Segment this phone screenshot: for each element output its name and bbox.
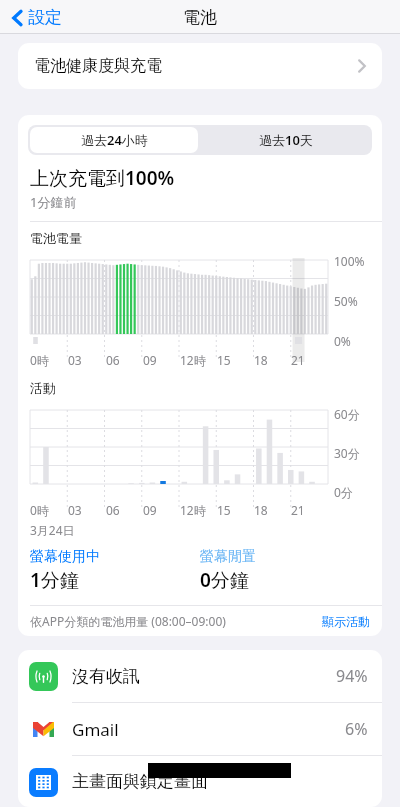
staticText: 60分 xyxy=(334,406,360,422)
button[interactable]: 過去10天 xyxy=(200,125,372,155)
button[interactable]: 主畫面與鎖定畫面 xyxy=(18,756,382,807)
staticText: 0分 xyxy=(334,484,353,500)
staticText: 1分鐘前 xyxy=(30,193,77,211)
staticText: 電池電量 xyxy=(30,230,82,246)
staticText: 15 xyxy=(217,352,231,368)
staticText: 18 xyxy=(254,352,268,368)
button[interactable]: 過去24小時 xyxy=(30,127,198,153)
staticText: 活動 xyxy=(30,380,56,396)
staticText: 18 xyxy=(254,502,268,518)
staticText: 主畫面與鎖定畫面 xyxy=(72,771,208,792)
staticText: 21 xyxy=(291,352,305,368)
staticText: 0時 xyxy=(30,502,49,518)
staticText: 30分 xyxy=(334,445,360,461)
staticText: 電池 xyxy=(183,7,217,28)
staticText: 0% xyxy=(334,333,351,349)
button[interactable]: Gmail xyxy=(18,703,382,756)
staticText: 過去24小時 xyxy=(81,131,148,149)
staticText: 0分鐘 xyxy=(200,567,249,593)
button[interactable]: 沒有收訊 xyxy=(18,650,382,703)
staticText: 50% xyxy=(334,293,358,309)
staticText: 螢幕使用中 xyxy=(30,548,100,566)
staticText: 沒有收訊 xyxy=(72,666,140,687)
staticText: 09 xyxy=(143,352,157,368)
staticText: 設定 xyxy=(28,7,62,28)
button[interactable]: 設定 xyxy=(8,5,66,30)
staticText: 依APP分類的電池用量 (08:00–09:00) xyxy=(30,613,226,629)
staticText: 1分鐘 xyxy=(30,567,79,593)
staticText: 螢幕閒置 xyxy=(200,548,256,566)
staticText: 3月24日 xyxy=(30,522,75,538)
staticText: 顯示活動 xyxy=(322,614,370,629)
staticText: 12時 xyxy=(180,502,206,518)
staticText: 0時 xyxy=(30,352,49,368)
staticText: 12時 xyxy=(180,352,206,368)
staticText: 100% xyxy=(334,253,365,269)
staticText: 21 xyxy=(291,502,305,518)
staticText: 09 xyxy=(143,502,157,518)
staticText: 03 xyxy=(68,352,82,368)
staticText: 電池健康度與充電 xyxy=(34,56,162,76)
staticText: 6% xyxy=(345,718,368,740)
button[interactable]: 顯示活動 xyxy=(322,614,370,629)
staticText: 03 xyxy=(68,502,82,518)
staticText: 94% xyxy=(336,665,368,687)
staticText: Gmail xyxy=(72,718,119,741)
staticText: 06 xyxy=(106,352,120,368)
button[interactable]: 電池健康度與充電 xyxy=(18,43,382,89)
staticText: 過去10天 xyxy=(259,131,313,149)
staticText: 06 xyxy=(106,502,120,518)
staticText: 上次充電到100% xyxy=(30,165,175,191)
staticText: 15 xyxy=(217,502,231,518)
